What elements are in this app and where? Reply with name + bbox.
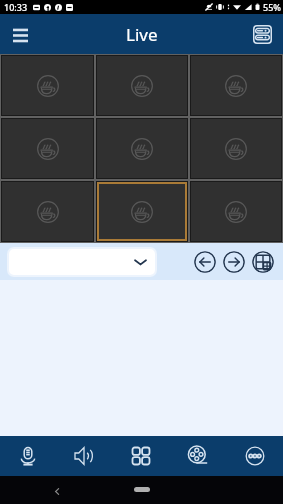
button[interactable]: Audio output [56, 436, 112, 476]
button[interactable]: Select camera group [9, 249, 155, 275]
button[interactable]: Camera 7 [2, 182, 93, 241]
button[interactable]: Camera 1 [2, 56, 93, 115]
button[interactable]: Camera 5 [97, 119, 187, 178]
button[interactable]: Next page [223, 251, 245, 273]
button[interactable]: Camera 2 [97, 56, 187, 115]
button[interactable]: Playback [169, 436, 226, 476]
button[interactable]: Camera 4 [2, 119, 93, 178]
button[interactable]: Back [49, 483, 65, 499]
button[interactable]: More options [226, 436, 283, 476]
button[interactable]: Open navigation menu [2, 16, 38, 52]
button[interactable]: Audio input [0, 436, 56, 476]
button[interactable]: Layout grid [112, 436, 169, 476]
button[interactable]: Camera 6 [191, 119, 281, 178]
button[interactable]: Previous page [194, 251, 216, 273]
staticText: Live [126, 23, 158, 46]
button[interactable]: Change layout [252, 251, 274, 273]
button[interactable]: Camera 9 [191, 182, 281, 241]
button[interactable]: Camera 3 [191, 56, 281, 115]
staticText: 10:33 [4, 1, 28, 13]
staticText: 55% [263, 1, 281, 13]
button[interactable]: Devices [245, 17, 279, 51]
button[interactable]: Home [134, 487, 150, 492]
button[interactable]: Camera 8 [97, 182, 187, 241]
